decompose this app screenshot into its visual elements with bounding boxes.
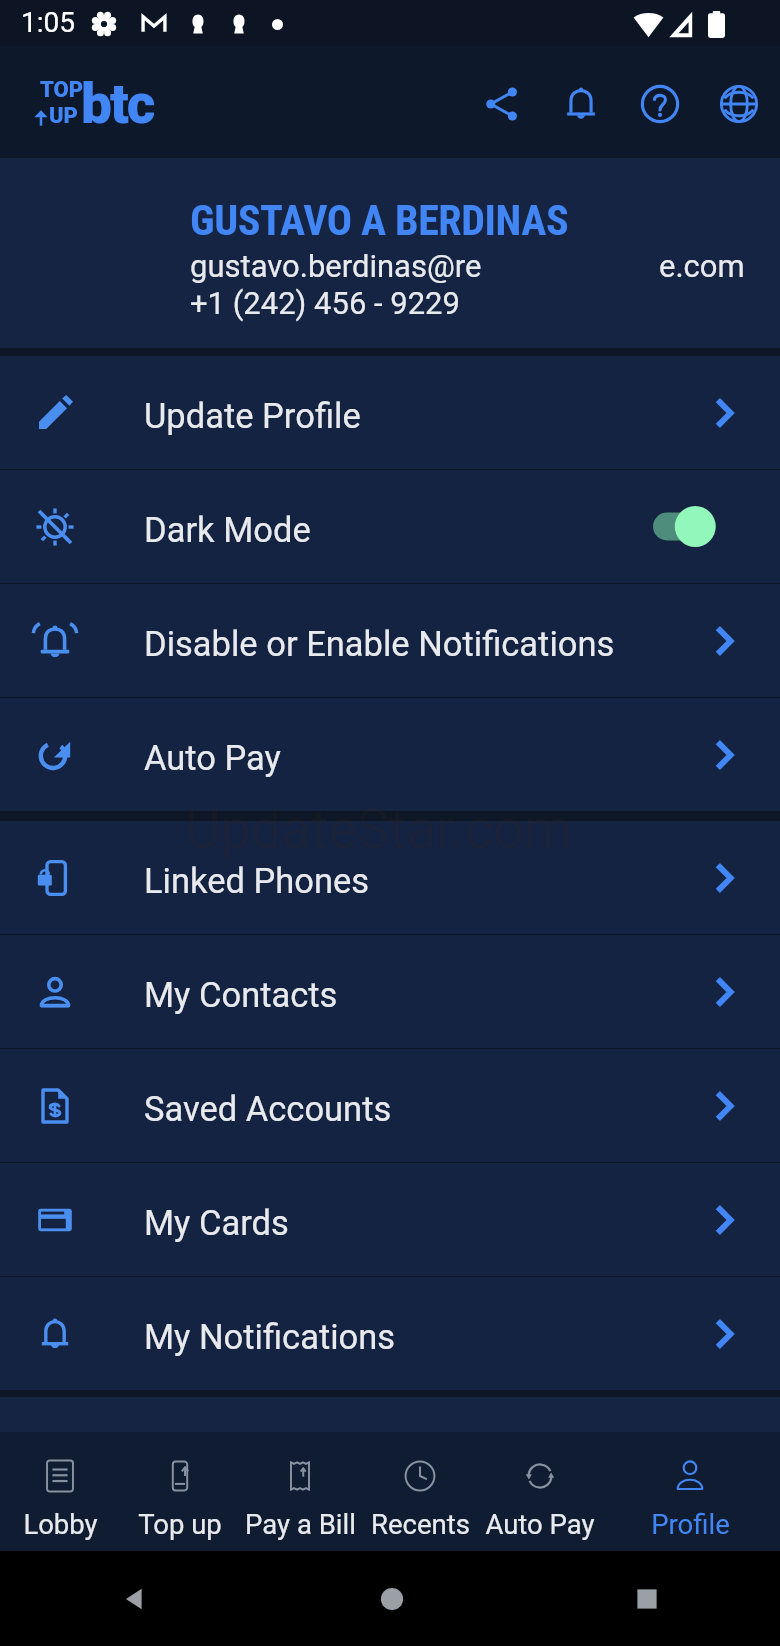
button[interactable]: Recents: [360, 1432, 480, 1551]
button[interactable]: Home: [377, 1584, 407, 1614]
staticText: Linked Phones: [144, 861, 370, 901]
button[interactable]: Saved Accounts: [0, 1049, 780, 1162]
staticText: My Contacts: [144, 975, 338, 1015]
button[interactable]: Update Profile: [0, 356, 780, 469]
staticText: My Notifications: [144, 1317, 396, 1357]
staticText: Top up: [138, 1508, 222, 1540]
staticText: btc: [81, 72, 154, 136]
staticText: gustavo.berdinas@re: [190, 248, 482, 284]
button[interactable]: Dark Mode: [0, 470, 780, 583]
staticText: UP: [49, 103, 78, 129]
staticText: 1:05: [21, 6, 75, 39]
button[interactable]: Share: [473, 75, 531, 133]
staticText: Recents: [371, 1508, 470, 1540]
button[interactable]: Recents: [634, 1586, 660, 1612]
staticText: UpdateStar.com: [185, 797, 572, 861]
staticText: Auto Pay: [144, 738, 281, 778]
button[interactable]: Back: [120, 1584, 150, 1614]
staticText: Auto Pay: [485, 1508, 595, 1540]
staticText: My Cards: [144, 1203, 289, 1243]
staticText: Disable or Enable Notifications: [144, 624, 615, 664]
staticText: TOP: [40, 77, 84, 103]
button[interactable]: Pay a Bill: [240, 1432, 360, 1551]
button[interactable]: Auto Pay: [0, 698, 780, 811]
button[interactable]: Lobby: [0, 1432, 120, 1551]
button[interactable]: Auto Pay: [480, 1432, 600, 1551]
button[interactable]: Linked Phones: [0, 821, 780, 934]
staticText: Saved Accounts: [144, 1089, 392, 1129]
staticText: GUSTAVO A BERDINAS: [190, 196, 569, 245]
staticText: Profile: [651, 1508, 730, 1540]
staticText: Lobby: [23, 1508, 98, 1540]
button[interactable]: Help: [631, 75, 689, 133]
button[interactable]: My Cards: [0, 1163, 780, 1276]
staticText: +1 (242) 456 - 9229: [190, 285, 460, 321]
button[interactable]: Notifications: [552, 75, 610, 133]
staticText: e.com: [659, 248, 745, 284]
button[interactable]: Language: [710, 75, 768, 133]
button[interactable]: My Contacts: [0, 935, 780, 1048]
button[interactable]: My Notifications: [0, 1277, 780, 1390]
staticText: Update Profile: [144, 396, 361, 436]
staticText: Dark Mode: [144, 510, 311, 550]
staticText: Pay a Bill: [245, 1508, 356, 1540]
button[interactable]: Profile: [600, 1432, 780, 1551]
button[interactable]: Disable or Enable Notifications: [0, 584, 780, 697]
button[interactable]: Top up: [120, 1432, 240, 1551]
